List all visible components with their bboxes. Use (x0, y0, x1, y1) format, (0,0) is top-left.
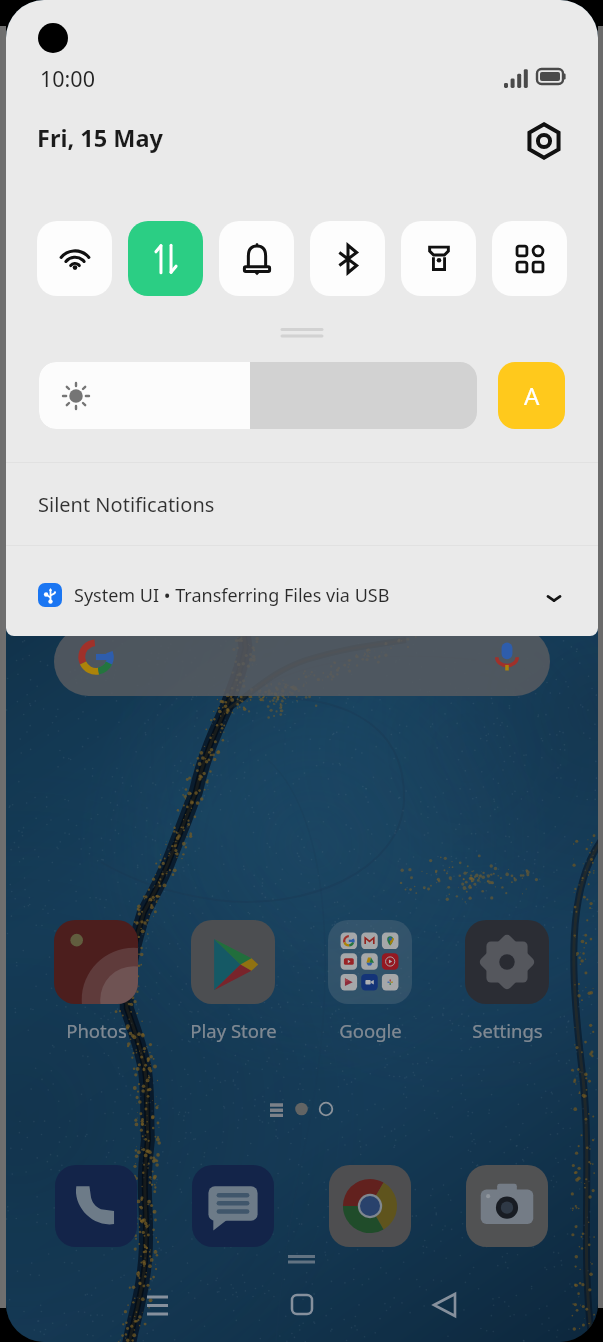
button[interactable]: Phone (55, 1165, 137, 1247)
staticText: Photos (66, 1018, 127, 1043)
button[interactable]: Bluetooth (310, 221, 385, 296)
button[interactable]: Home (276, 1282, 328, 1330)
staticText: Settings (472, 1018, 543, 1043)
button[interactable]: Flashlight (401, 221, 476, 296)
button[interactable]: Settings (524, 121, 564, 161)
staticText: A (524, 379, 540, 412)
staticText: 10:00 (40, 64, 95, 93)
button[interactable]: Wi-Fi (37, 221, 112, 296)
staticText: Fri, 15 May (37, 122, 163, 154)
button[interactable]: Play Store (173, 920, 293, 1030)
button[interactable]: Photos (36, 920, 156, 1030)
button[interactable]: Page indicator (264, 1098, 350, 1122)
button[interactable]: Google (310, 920, 430, 1030)
button[interactable]: Back (418, 1282, 470, 1330)
staticText: Silent Notifications (38, 491, 215, 518)
button[interactable]: Brightness (39, 362, 477, 429)
button[interactable]: System UI • Transferring Files via USB (6, 550, 598, 636)
button[interactable]: Recents (124, 1282, 176, 1330)
button[interactable]: Messages (192, 1165, 274, 1247)
button[interactable]: More tiles (492, 221, 567, 296)
staticText: Play Store (190, 1018, 277, 1043)
button[interactable]: Auto brightness (498, 362, 565, 429)
button[interactable]: Silent (219, 221, 294, 296)
button[interactable]: Search (54, 627, 550, 696)
button[interactable]: Camera (466, 1165, 548, 1247)
staticText: System UI • Transferring Files via USB (74, 583, 390, 608)
button[interactable]: Mobile data (128, 221, 203, 296)
staticText: Google (339, 1018, 402, 1043)
button[interactable]: Settings (447, 920, 567, 1030)
button[interactable]: Chrome (329, 1165, 411, 1247)
